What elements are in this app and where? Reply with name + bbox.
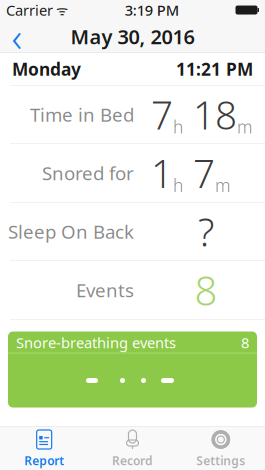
staticText: Report bbox=[24, 452, 64, 468]
staticText: ? bbox=[198, 206, 214, 257]
staticText: ᯤ bbox=[53, 1, 68, 19]
staticText: 7 bbox=[151, 89, 173, 140]
staticText: Carrier bbox=[6, 0, 53, 20]
staticText: ‹ bbox=[11, 10, 22, 63]
button[interactable]: Report bbox=[0, 427, 88, 470]
staticText: 8 bbox=[241, 333, 249, 352]
button[interactable]: Snore-breathing events bbox=[8, 331, 257, 407]
staticText: Settings bbox=[196, 452, 245, 468]
staticText: h bbox=[173, 115, 183, 138]
button[interactable]: Record bbox=[88, 427, 177, 470]
staticText: Events bbox=[76, 278, 134, 302]
staticText: May 30, 2016 bbox=[70, 23, 194, 50]
staticText: m bbox=[215, 174, 230, 197]
button[interactable]: Back bbox=[0, 20, 34, 52]
staticText: 7 bbox=[183, 147, 215, 199]
staticText: Snored for bbox=[42, 161, 134, 185]
staticText: 11:21 PM bbox=[176, 57, 253, 80]
staticText: 18 bbox=[183, 89, 237, 140]
staticText: Record bbox=[112, 452, 153, 468]
staticText: 3:19 PM bbox=[125, 0, 179, 20]
button[interactable]: Settings bbox=[177, 427, 265, 470]
staticText: h bbox=[173, 174, 183, 197]
staticText: Snore-breathing events bbox=[16, 333, 176, 352]
staticText: Time in Bed bbox=[30, 102, 134, 127]
staticText: Monday bbox=[12, 57, 81, 80]
staticText: 8 bbox=[194, 263, 217, 316]
staticText: m bbox=[237, 115, 252, 138]
staticText: Sleep On Back bbox=[8, 219, 134, 244]
staticText: 1 bbox=[151, 147, 173, 199]
